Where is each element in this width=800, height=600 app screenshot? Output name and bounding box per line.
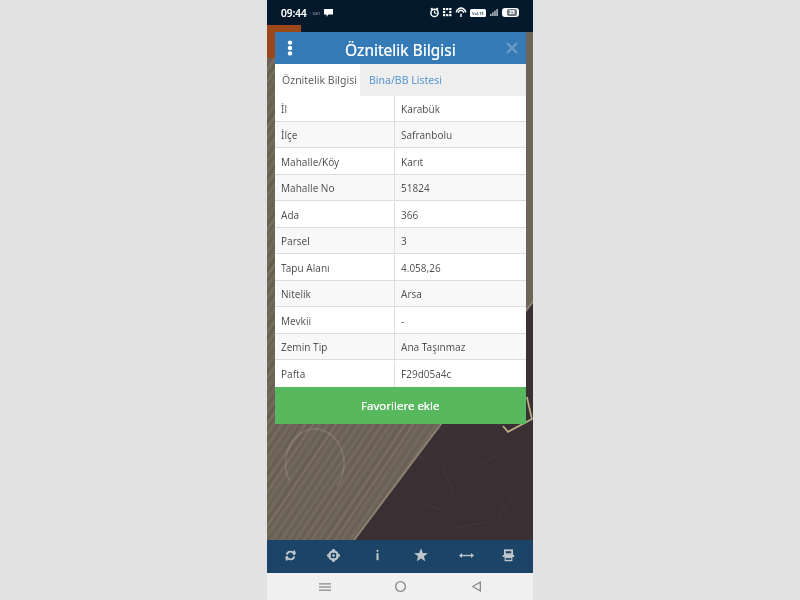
staticText: 4.058,26 bbox=[401, 261, 441, 275]
staticText: Mahalle/Köy bbox=[281, 155, 340, 169]
staticText: F29d05a4c bbox=[401, 367, 452, 381]
button[interactable]: Home bbox=[383, 573, 417, 600]
button[interactable]: Refresh bbox=[275, 540, 305, 570]
staticText: Arsa bbox=[401, 287, 422, 301]
staticText: Ana Taşınmaz bbox=[401, 340, 466, 354]
button[interactable]: Bina/BB Listesi bbox=[360, 64, 526, 96]
button[interactable]: Information bbox=[362, 540, 392, 570]
staticText: Öznitelik Bilgisi bbox=[345, 39, 456, 60]
staticText: Parsel bbox=[281, 234, 310, 248]
staticText: Mahalle No bbox=[281, 181, 335, 195]
button[interactable]: Back bbox=[459, 573, 493, 600]
button[interactable]: Öznitelik Bilgisi bbox=[275, 64, 360, 96]
staticText: İlçe bbox=[281, 128, 298, 142]
staticText: Zemin Tip bbox=[281, 340, 328, 354]
button[interactable]: Close bbox=[504, 40, 520, 56]
staticText: Nitelik bbox=[281, 287, 311, 301]
staticText: İl bbox=[281, 102, 287, 116]
button[interactable]: More options bbox=[283, 41, 297, 55]
staticText: 23 bbox=[509, 9, 515, 16]
staticText: 366 bbox=[401, 208, 419, 222]
staticText: 3 bbox=[401, 234, 407, 248]
button[interactable]: Print bbox=[493, 540, 523, 570]
staticText: Bina/BB Listesi bbox=[369, 73, 442, 87]
staticText: Tapu Alanı bbox=[281, 261, 330, 275]
staticText: 51824 bbox=[401, 181, 430, 195]
button[interactable]: Measure distance bbox=[451, 540, 481, 570]
staticText: 09:44 bbox=[281, 6, 307, 20]
button[interactable]: Favorilere ekle bbox=[275, 387, 526, 424]
staticText: Öznitelik Bilgisi bbox=[282, 73, 357, 87]
staticText: - bbox=[401, 314, 405, 328]
staticText: · sun bbox=[310, 10, 321, 16]
staticText: Mevkii bbox=[281, 314, 312, 328]
staticText: Favorilere ekle bbox=[361, 398, 440, 414]
staticText: VoLTE bbox=[472, 11, 484, 16]
staticText: Safranbolu bbox=[401, 128, 453, 142]
button[interactable]: My location bbox=[318, 540, 348, 570]
button[interactable]: Recent apps bbox=[308, 573, 342, 600]
staticText: Karıt bbox=[401, 155, 424, 169]
staticText: Ada bbox=[281, 208, 300, 222]
staticText: Pafta bbox=[281, 367, 306, 381]
button[interactable]: Favorites bbox=[406, 540, 436, 570]
staticText: Karabük bbox=[401, 102, 441, 116]
